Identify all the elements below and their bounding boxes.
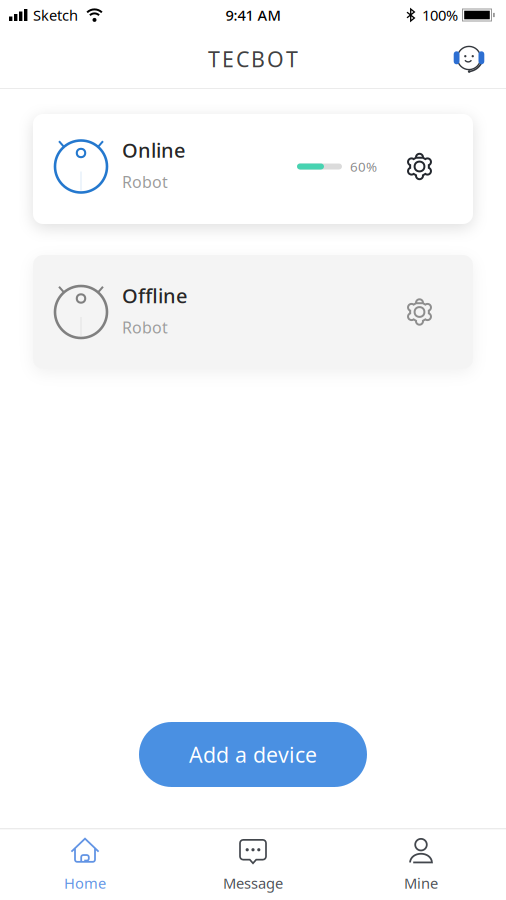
staticText: Robot: [122, 171, 168, 192]
button[interactable]: Customer service: [452, 42, 486, 76]
staticText: Mine: [404, 873, 438, 893]
button[interactable]: Settings: [406, 298, 433, 325]
button[interactable]: Offline: [33, 255, 473, 369]
staticText: Home: [64, 873, 106, 893]
button[interactable]: Add a device: [139, 722, 367, 787]
staticText: Robot: [122, 317, 168, 338]
staticText: Offline: [122, 282, 187, 309]
button[interactable]: Online: [33, 114, 473, 224]
button[interactable]: Settings: [406, 153, 433, 180]
staticText: Sketch: [33, 5, 78, 25]
staticText: 60%: [350, 158, 377, 175]
staticText: 100%: [422, 5, 458, 25]
staticText: Add a device: [189, 740, 317, 769]
staticText: Message: [223, 873, 283, 893]
button[interactable]: Mine: [337, 835, 505, 893]
staticText: T E C B O T: [208, 45, 298, 73]
staticText: Online: [122, 137, 185, 163]
button[interactable]: Message: [169, 835, 337, 893]
staticText: 9:41 AM: [225, 5, 280, 25]
button[interactable]: Home: [1, 835, 169, 893]
